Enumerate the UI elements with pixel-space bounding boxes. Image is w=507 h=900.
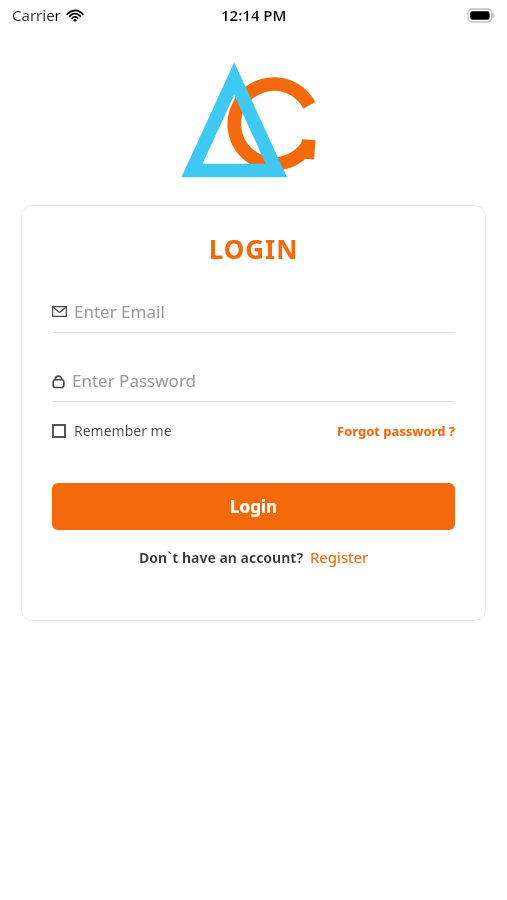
staticText: LOGIN (52, 231, 455, 266)
staticText: Enter Password (72, 369, 197, 392)
staticText: 12:14 PM (221, 5, 287, 25)
button[interactable]: Enter Password (52, 367, 455, 394)
staticText: Carrier (12, 5, 61, 25)
button[interactable]: Forgot password ? (337, 422, 455, 440)
staticText: Login (230, 495, 278, 518)
staticText: Enter Email (74, 300, 165, 323)
button[interactable]: Register (310, 547, 369, 567)
staticText: Don`t have an account? (139, 548, 304, 567)
staticText: Register (310, 547, 369, 567)
staticText: Forgot password ? (337, 422, 455, 440)
button[interactable]: Login (52, 483, 455, 530)
staticText: Remember me (74, 421, 172, 440)
button[interactable]: Remember me (52, 421, 172, 440)
button[interactable]: Enter Email (52, 298, 455, 325)
